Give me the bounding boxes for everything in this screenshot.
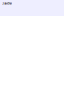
staticText: Заметки <box>2 2 12 5</box>
